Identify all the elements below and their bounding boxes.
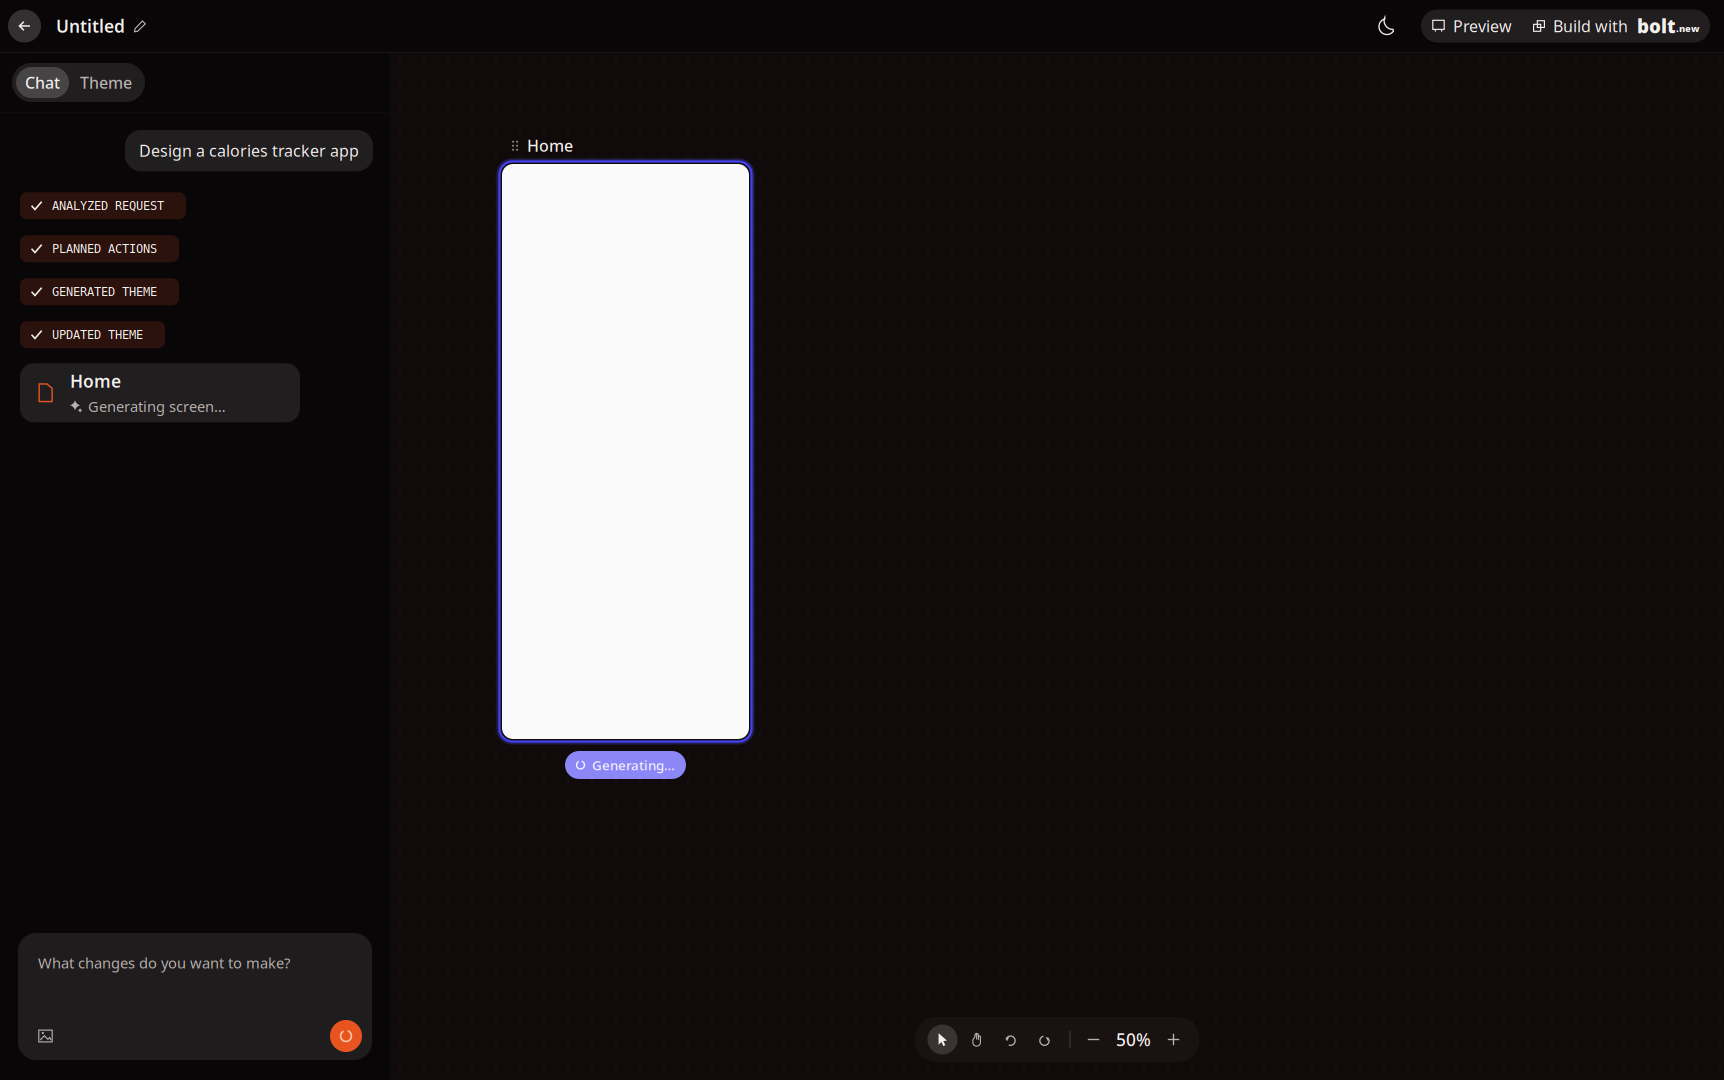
button[interactable]: Attach image	[33, 1023, 58, 1048]
staticText: .new	[1676, 22, 1699, 35]
staticText: Generating…	[592, 756, 675, 774]
button[interactable]: Theme	[71, 67, 141, 98]
button[interactable]: Build with	[1524, 9, 1710, 42]
button[interactable]: Home	[20, 363, 300, 422]
staticText: Home	[70, 369, 121, 392]
button[interactable]: Toggle appearance	[1366, 6, 1421, 45]
button[interactable]: Rename project	[125, 11, 155, 41]
staticText: What changes do you want to make?	[38, 953, 290, 972]
staticText: UPDATED THEME	[52, 328, 143, 341]
staticText: GENERATED THEME	[52, 285, 157, 298]
staticText: Generating screen…	[88, 396, 226, 416]
staticText: Untitled	[56, 14, 125, 37]
button[interactable]: Zoom out	[1078, 1022, 1108, 1056]
button[interactable]: Chat	[16, 67, 69, 98]
staticText: Build with	[1553, 15, 1628, 37]
button[interactable]: Pan tool	[959, 1022, 993, 1056]
button[interactable]: Zoom in	[1158, 1022, 1188, 1056]
staticText: Preview	[1453, 15, 1512, 37]
button[interactable]: Undo	[993, 1022, 1027, 1056]
button[interactable]: Stop generating	[330, 1020, 362, 1052]
button[interactable]: Preview	[1421, 9, 1524, 42]
staticText: bolt	[1637, 14, 1676, 38]
button[interactable]: Back	[8, 9, 41, 42]
staticText: Chat	[25, 72, 60, 93]
button[interactable]: Select tool	[925, 1022, 959, 1056]
staticText: Theme	[80, 72, 132, 93]
staticText: Design a calories tracker app	[139, 140, 359, 161]
button[interactable]: Redo	[1027, 1022, 1061, 1056]
staticText: Home	[527, 135, 573, 156]
staticText: 50%	[1116, 1028, 1151, 1051]
staticText: ANALYZED REQUEST	[52, 199, 164, 212]
staticText: PLANNED ACTIONS	[52, 242, 157, 255]
